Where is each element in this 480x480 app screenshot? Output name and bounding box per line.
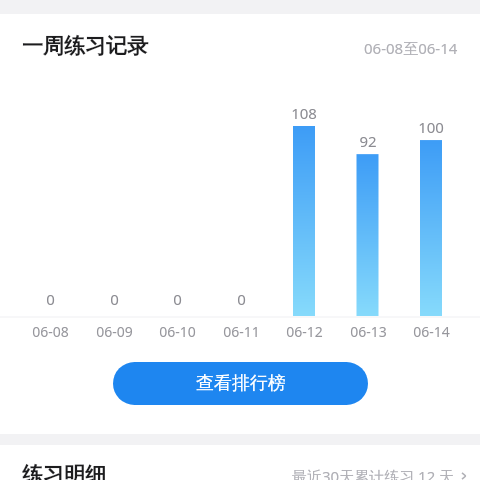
other: More bbox=[460, 472, 468, 480]
staticText: 108 bbox=[291, 103, 317, 123]
staticText: 06-09 bbox=[96, 322, 133, 341]
staticText: 06-13 bbox=[350, 322, 387, 341]
staticText: 0 bbox=[110, 289, 119, 309]
staticText: 0 bbox=[237, 289, 246, 309]
staticText: 100 bbox=[418, 117, 444, 137]
staticText: 查看排行榜 bbox=[196, 372, 286, 395]
staticText: 06-08至06-14 bbox=[364, 38, 458, 58]
staticText: 0 bbox=[173, 289, 182, 309]
staticText: 06-10 bbox=[159, 322, 196, 341]
staticText: 06-12 bbox=[286, 322, 323, 341]
staticText: 最近30天累计练习 12 天 bbox=[292, 466, 455, 480]
staticText: 92 bbox=[359, 131, 377, 151]
staticText: 06-08 bbox=[32, 322, 69, 341]
button[interactable]: 查看排行榜 bbox=[113, 362, 368, 405]
staticText: 06-11 bbox=[223, 322, 260, 341]
staticText: 06-14 bbox=[413, 322, 450, 341]
staticText: 一周练习记录 bbox=[22, 33, 148, 59]
staticText: 练习明细 bbox=[22, 462, 106, 480]
staticText: 0 bbox=[46, 289, 55, 309]
button[interactable]: 练习明细 bbox=[0, 445, 480, 480]
